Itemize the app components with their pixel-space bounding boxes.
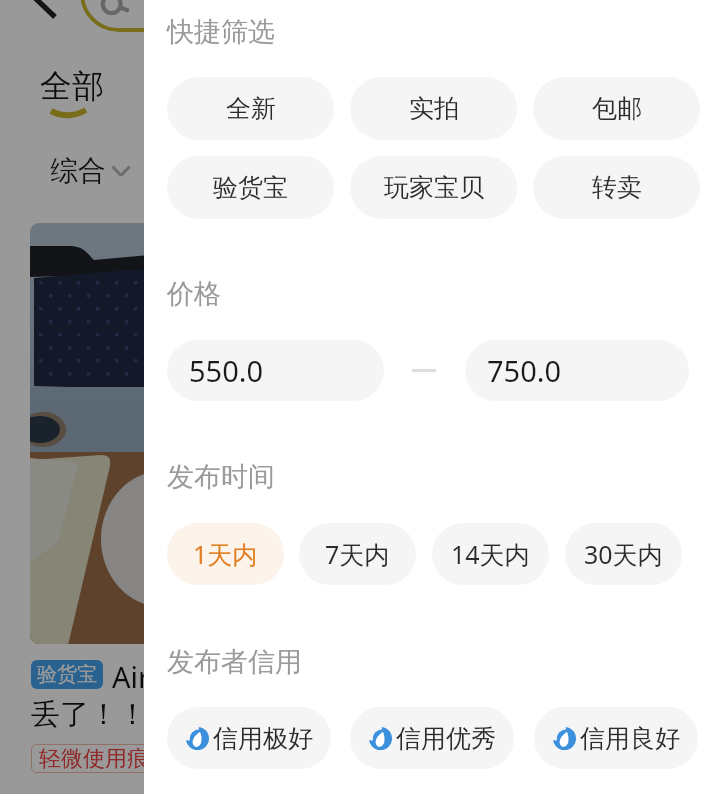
button[interactable]: 全部 xyxy=(40,66,104,106)
button[interactable]: Search xyxy=(80,0,360,32)
staticText: 丢了！！！ xyxy=(31,696,176,733)
staticText: 发布时间 xyxy=(167,460,275,494)
staticText: 转卖 xyxy=(592,172,642,203)
staticText: 7天内 xyxy=(325,537,390,571)
button[interactable]: 1天内 xyxy=(167,523,284,585)
staticText: 信用良好 xyxy=(580,723,680,754)
button[interactable] xyxy=(30,223,172,644)
staticText: 包邮 xyxy=(592,93,642,124)
button[interactable]: 转卖 xyxy=(533,156,700,219)
button[interactable]: 验货宝 xyxy=(31,660,103,689)
staticText: 验货宝 xyxy=(37,662,97,687)
staticText: 750.0 xyxy=(487,351,562,390)
staticText: 14天内 xyxy=(451,537,530,571)
button[interactable]: 全新 xyxy=(167,77,334,140)
button[interactable]: 30天内 xyxy=(565,523,682,585)
button[interactable]: 包邮 xyxy=(533,77,700,140)
button[interactable]: 实拍 xyxy=(350,77,517,140)
staticText: 验货宝 xyxy=(213,172,288,203)
staticText: 信用优秀 xyxy=(396,723,496,754)
button[interactable]: 7天内 xyxy=(299,523,416,585)
button[interactable]: 14天内 xyxy=(432,523,549,585)
button[interactable]: 750.0 xyxy=(465,340,689,401)
button[interactable]: 信用良好 xyxy=(534,707,698,769)
staticText: 玩家宝贝 xyxy=(384,172,484,203)
button[interactable]: 综合 xyxy=(50,153,106,188)
staticText: 价格 xyxy=(167,277,221,311)
button[interactable]: 验货宝 xyxy=(167,156,334,219)
staticText: 信用极好 xyxy=(213,723,313,754)
staticText: 全新 xyxy=(226,93,276,124)
staticText: 轻微使用痕迹 xyxy=(39,745,171,773)
staticText: 1天内 xyxy=(193,537,258,571)
staticText: 550.0 xyxy=(189,351,264,390)
button[interactable]: 信用极好 xyxy=(167,707,331,769)
staticText: 30天内 xyxy=(584,537,663,571)
staticText: 快捷筛选 xyxy=(167,15,275,49)
button[interactable]: Back xyxy=(30,0,60,30)
staticText: 实拍 xyxy=(409,93,459,124)
staticText: 发布者信用 xyxy=(167,645,302,679)
button[interactable]: 玩家宝贝 xyxy=(350,156,517,219)
button[interactable]: 信用优秀 xyxy=(350,707,514,769)
staticText: AirPods xyxy=(112,657,217,696)
button[interactable]: 550.0 xyxy=(167,340,384,401)
